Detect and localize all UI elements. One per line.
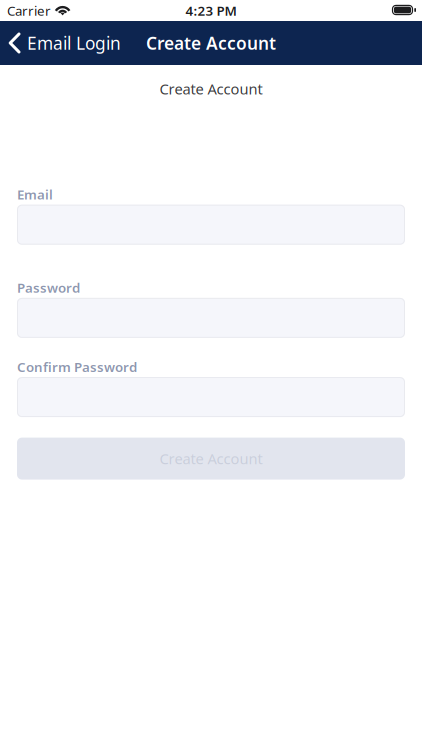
staticText: Email Login (27, 31, 121, 54)
staticText: Create Account (146, 31, 276, 54)
staticText: Create Account (159, 449, 262, 468)
staticText: 4:23 PM (185, 2, 236, 19)
staticText: Email (17, 185, 53, 203)
staticText: Create Account (159, 79, 262, 98)
button[interactable]: Email Login (0, 21, 129, 65)
staticText: Carrier (7, 2, 51, 19)
staticText: Confirm Password (17, 358, 137, 376)
button[interactable]: Create Account (17, 438, 405, 480)
staticText: Password (17, 279, 80, 296)
